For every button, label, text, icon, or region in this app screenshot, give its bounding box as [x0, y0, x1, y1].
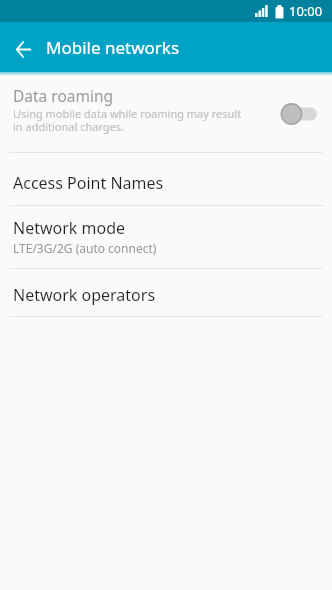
button[interactable]: Access Point Names	[0, 153, 332, 205]
button[interactable]: Network operators	[0, 269, 332, 316]
staticText: Network operators	[13, 284, 156, 306]
button[interactable]: Network mode	[0, 206, 332, 268]
staticText: Data roaming	[13, 85, 114, 106]
staticText: Network mode	[13, 217, 126, 239]
button[interactable]: Data roaming	[0, 72, 332, 152]
button[interactable]	[0, 22, 46, 72]
staticText: Access Point Names	[13, 172, 164, 194]
staticText: 10:00	[289, 2, 323, 20]
staticText: Mobile networks	[46, 36, 180, 59]
staticText: Using mobile data while roaming may resu…	[13, 106, 242, 134]
staticText: LTE/3G/2G (auto connect)	[13, 240, 157, 256]
